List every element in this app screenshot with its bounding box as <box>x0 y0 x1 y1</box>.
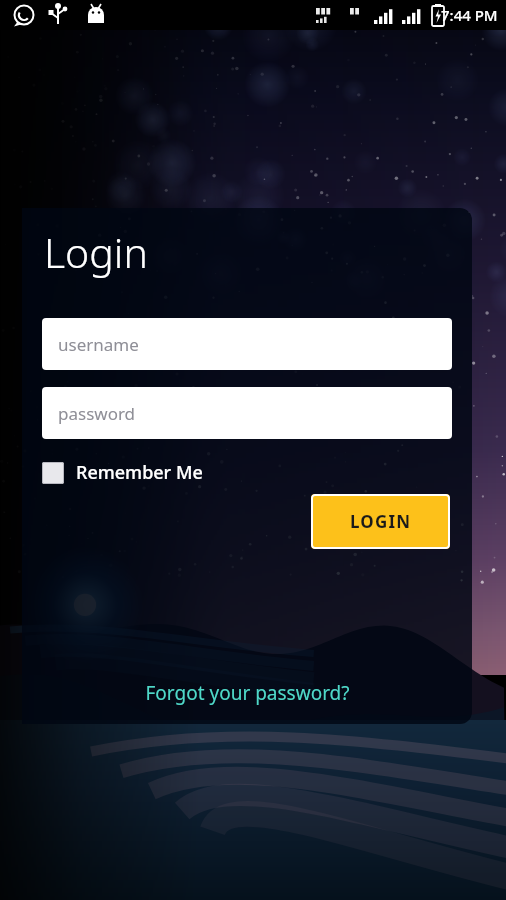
button[interactable]: password <box>42 387 452 439</box>
staticText: Login <box>44 224 148 280</box>
button[interactable]: LOGIN <box>311 494 450 549</box>
button[interactable]: Remember Me <box>42 452 209 493</box>
button[interactable]: Forgot your password? <box>22 680 472 724</box>
button[interactable]: username <box>42 318 452 370</box>
staticText: Forgot your password? <box>145 680 350 706</box>
staticText: Remember Me <box>76 460 203 485</box>
staticText: password <box>58 402 136 425</box>
staticText: username <box>58 333 139 356</box>
staticText: 7:44 PM <box>441 5 498 25</box>
staticText: LOGIN <box>350 510 412 533</box>
